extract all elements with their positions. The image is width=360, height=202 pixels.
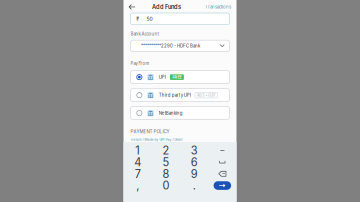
staticText: **********2290 - HDFC Bank: [141, 43, 200, 48]
staticText: 50: [146, 16, 152, 22]
button[interactable]: 4: [123, 156, 152, 168]
staticText: Pay From: [130, 61, 149, 66]
button[interactable]: Transactions: [205, 0, 236, 13]
button[interactable]: 9: [180, 168, 208, 180]
staticText: 2: [162, 144, 169, 157]
button[interactable]: 7: [123, 168, 152, 180]
staticText: 9: [191, 167, 198, 181]
button[interactable]: 3: [180, 145, 208, 156]
staticText: 0: [162, 179, 169, 192]
button[interactable]: Enter: [208, 180, 236, 191]
button[interactable]: .: [180, 180, 208, 191]
staticText: 3: [191, 144, 198, 157]
staticText: UPI: [159, 74, 166, 80]
button[interactable]: Third party UPI: [130, 89, 229, 102]
button[interactable]: 2: [152, 145, 180, 156]
staticText: 6: [191, 155, 198, 169]
staticText: ₹: [136, 16, 139, 22]
button[interactable]: NetBanking: [130, 107, 229, 120]
button[interactable]: Back: [123, 0, 140, 13]
staticText: Bank Account: [130, 31, 158, 36]
button[interactable]: **********2290 - HDFC Bank: [130, 40, 229, 51]
staticText: 8: [162, 167, 169, 181]
button[interactable]: 8: [152, 168, 180, 180]
staticText: Third party UPI: [159, 92, 191, 98]
button[interactable]: 5: [152, 156, 180, 168]
button[interactable]: [208, 168, 236, 180]
staticText: PAYMENT POLICY: [130, 129, 169, 134]
staticText: 5: [162, 155, 169, 169]
staticText: 4: [134, 155, 141, 169]
button[interactable]: UPI: [130, 71, 229, 84]
staticText: 1: [135, 144, 140, 157]
staticText: .: [193, 179, 196, 192]
staticText: Add Funds: [152, 4, 181, 10]
button[interactable]: 6: [180, 156, 208, 168]
staticText: 7: [135, 167, 141, 181]
button[interactable]: [208, 156, 236, 168]
staticText: FREE: [172, 75, 181, 79]
button[interactable]: 0: [152, 180, 180, 191]
button[interactable]: ,: [123, 180, 152, 191]
button[interactable]: 1: [123, 145, 152, 156]
staticText: Transactions: [205, 4, 231, 10]
staticText: RS 5 + GST: [197, 93, 215, 97]
button[interactable]: [208, 145, 236, 156]
staticText: Instant / Made by UPI Pay / Debit: [130, 137, 182, 141]
staticText: NetBanking: [159, 110, 183, 116]
staticText: ,: [136, 179, 139, 192]
